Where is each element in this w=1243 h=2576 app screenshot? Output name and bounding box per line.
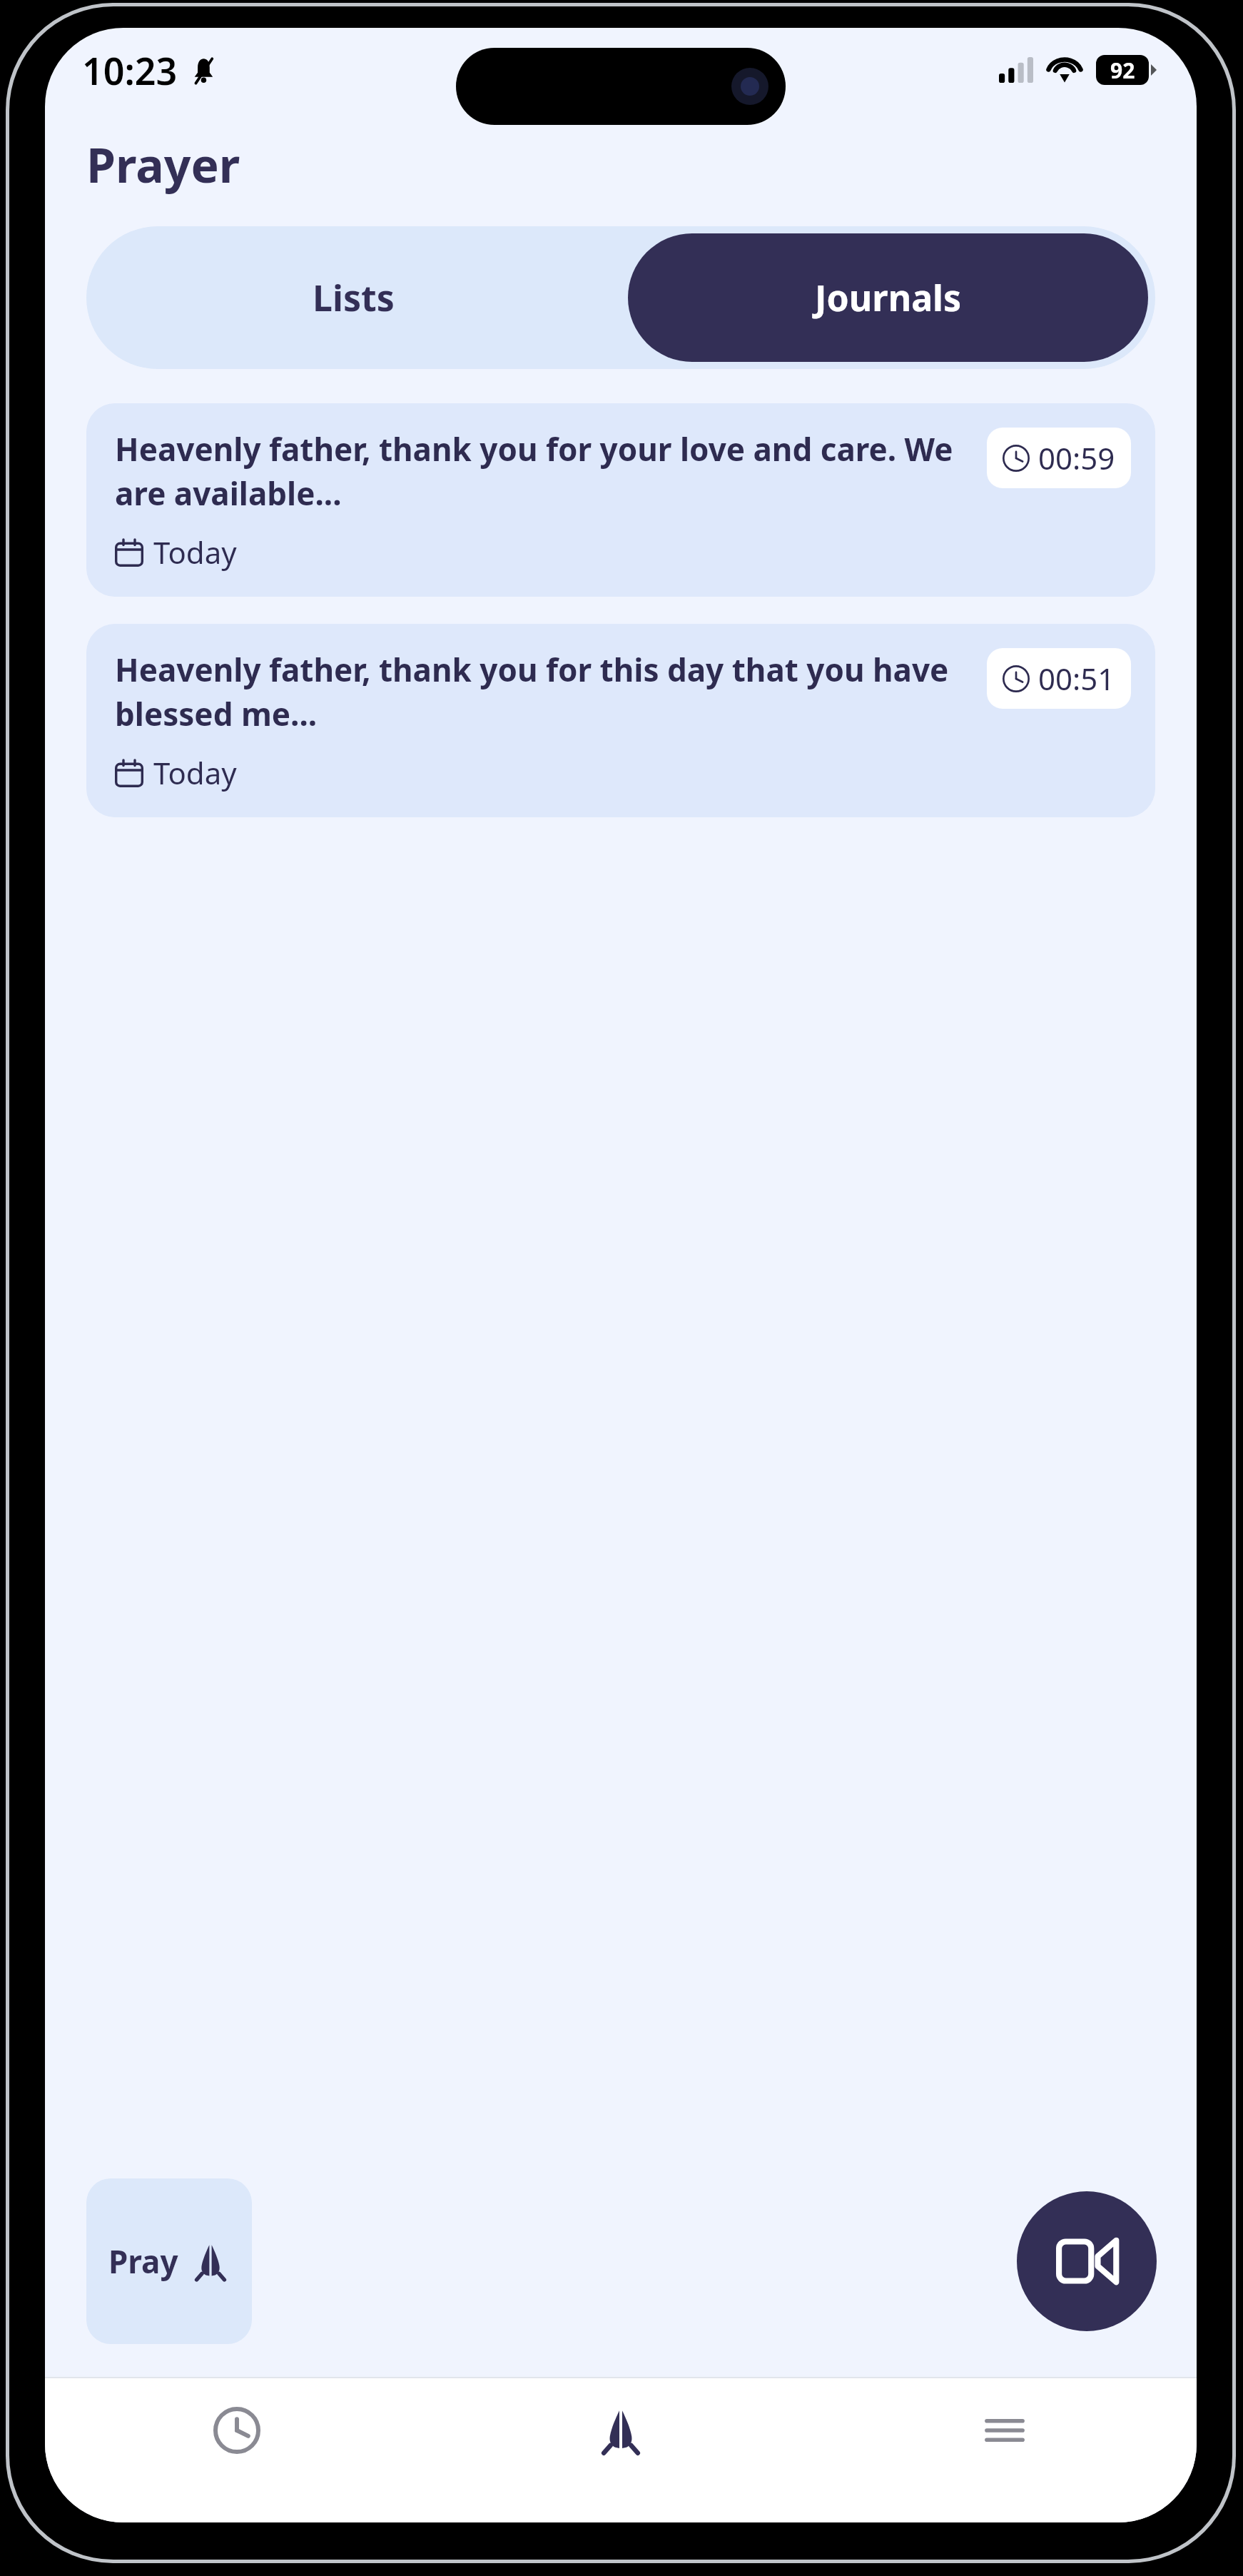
button[interactable]: Record video <box>1017 2191 1157 2331</box>
button[interactable]: Heavenly father, thank you for your love… <box>86 403 1155 597</box>
staticText: 00:51 <box>1038 658 1115 699</box>
button[interactable]: Journals <box>628 233 1148 362</box>
staticText: 10:23 <box>82 45 178 96</box>
staticText: Heavenly father, thank you for this day … <box>115 648 970 735</box>
staticText: Lists <box>313 273 395 322</box>
button[interactable]: Pray <box>429 2378 813 2522</box>
button[interactable]: Pray <box>86 2178 252 2344</box>
staticText: Pray <box>108 2240 178 2283</box>
staticText: Prayer <box>86 132 240 196</box>
staticText: Heavenly father, thank you for your love… <box>115 428 970 515</box>
button[interactable]: Heavenly father, thank you for this day … <box>86 624 1155 817</box>
staticText: Today <box>153 532 237 572</box>
staticText: 00:59 <box>1038 438 1115 478</box>
button[interactable]: History <box>45 2378 429 2522</box>
staticText: Today <box>153 752 237 793</box>
staticText: 92 <box>1110 56 1135 85</box>
button[interactable]: Lists <box>86 226 621 369</box>
button[interactable]: Menu <box>813 2378 1197 2522</box>
staticText: Journals <box>815 273 962 322</box>
